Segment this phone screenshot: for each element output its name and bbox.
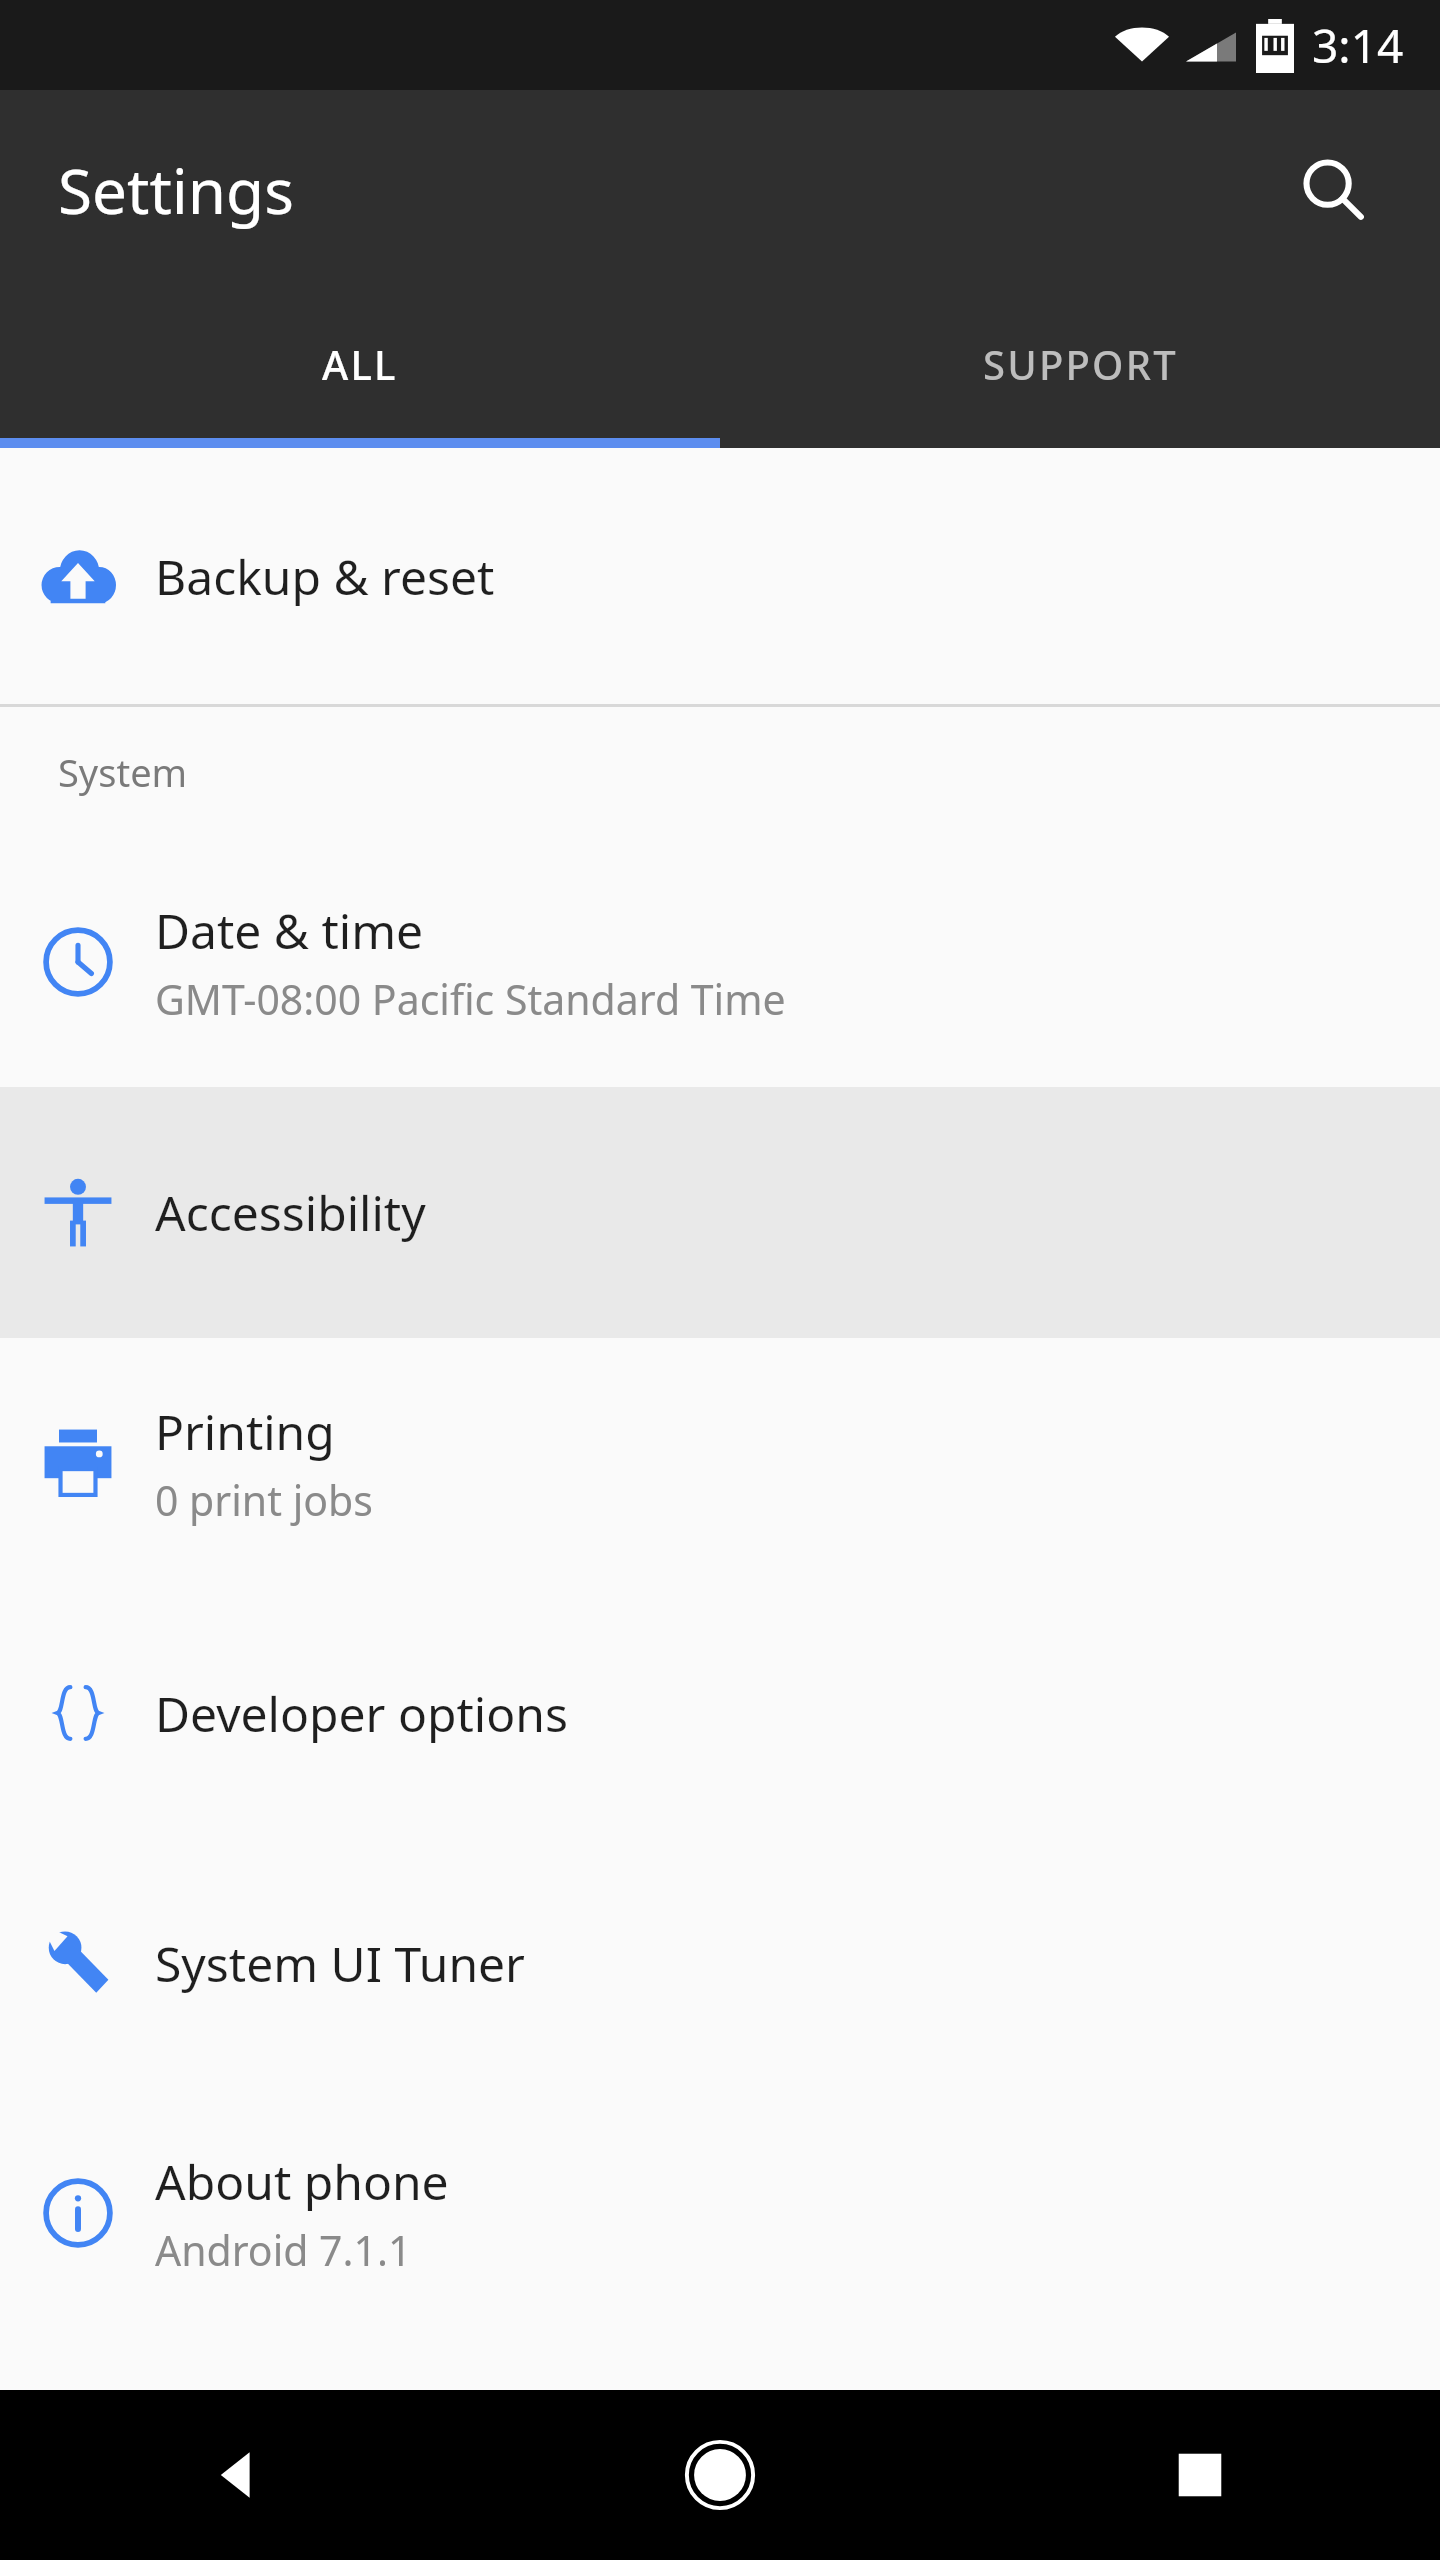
staticText: Date & time [155, 898, 424, 963]
staticText: About phone [155, 2149, 449, 2214]
staticText: Developer options [155, 1681, 568, 1746]
button[interactable]: Home [480, 2390, 960, 2560]
button[interactable]: Date & time [0, 837, 1440, 1087]
staticText: System UI Tuner [155, 1931, 525, 1996]
staticText: Accessibility [155, 1180, 426, 1245]
button[interactable]: Backup & reset [0, 448, 1440, 704]
staticText: System [58, 746, 188, 798]
button[interactable]: Developer options [0, 1588, 1440, 1838]
staticText: Settings [58, 148, 294, 232]
staticText: Android 7.1.1 [155, 2222, 412, 2278]
button[interactable]: ALL [0, 290, 720, 438]
staticText: 3:14 [1312, 14, 1404, 77]
button[interactable]: Search [1264, 120, 1404, 260]
button[interactable]: Recents [960, 2390, 1440, 2560]
staticText: 0 print jobs [155, 1472, 373, 1528]
button[interactable]: About phone [0, 2088, 1440, 2338]
staticText: Printing [155, 1399, 335, 1464]
staticText: GMT-08:00 Pacific Standard Time [155, 971, 786, 1027]
button[interactable]: Accessibility [0, 1087, 1440, 1338]
staticText: ALL [322, 337, 398, 391]
button[interactable]: Back [0, 2390, 480, 2560]
button[interactable]: Printing [0, 1338, 1440, 1588]
staticText: Backup & reset [155, 544, 495, 609]
button[interactable]: SUPPORT [720, 290, 1440, 438]
staticText: SUPPORT [983, 337, 1178, 391]
button[interactable]: System UI Tuner [0, 1838, 1440, 2088]
